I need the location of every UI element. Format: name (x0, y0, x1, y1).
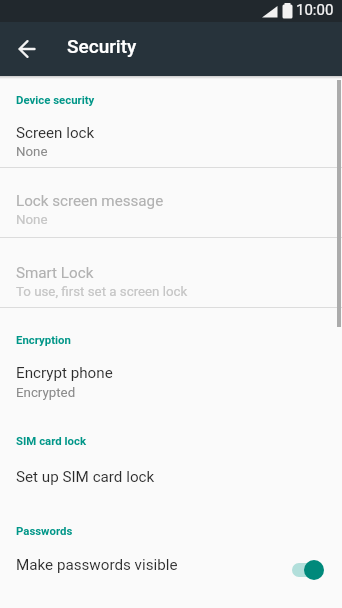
staticText: Make passwords visible (16, 556, 178, 574)
button[interactable]: Lock screen message (0, 168, 342, 237)
staticText: None (16, 212, 48, 228)
staticText: Lock screen message (16, 192, 164, 210)
staticText: Security (67, 35, 137, 57)
staticText: 10:00 (296, 1, 334, 19)
button[interactable]: Screen lock (0, 105, 342, 167)
staticText: Encryption (16, 333, 71, 346)
staticText: Device security (16, 93, 95, 106)
staticText: None (16, 144, 48, 160)
button[interactable] (12, 31, 46, 65)
button[interactable]: Make passwords visible (0, 544, 342, 594)
staticText: Set up SIM card lock (16, 468, 155, 486)
button[interactable]: Set up SIM card lock (0, 458, 342, 502)
staticText: Screen lock (16, 124, 95, 142)
staticText: SIM card lock (16, 434, 87, 447)
staticText: To use, first set a screen lock (16, 284, 188, 300)
staticText: Encrypt phone (16, 364, 113, 382)
button[interactable]: Encrypt phone (0, 352, 342, 412)
staticText: Encrypted (16, 385, 76, 401)
button[interactable]: Smart Lock (0, 238, 342, 307)
staticText: Passwords (16, 524, 73, 537)
staticText: Smart Lock (16, 264, 94, 282)
